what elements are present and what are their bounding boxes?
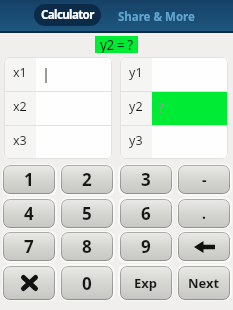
staticText: 0 bbox=[82, 272, 92, 295]
staticText: y2 bbox=[129, 98, 143, 115]
staticText: - bbox=[202, 170, 207, 189]
staticText: x3 bbox=[13, 132, 27, 149]
staticText: 3 bbox=[141, 168, 151, 191]
staticText: y1 bbox=[129, 64, 143, 81]
staticText: Share & More bbox=[118, 9, 195, 25]
staticText: 4 bbox=[24, 202, 34, 225]
staticText: . bbox=[202, 204, 206, 223]
staticText: 6 bbox=[141, 202, 151, 225]
staticText: x1 bbox=[13, 64, 27, 81]
staticText: y3 bbox=[129, 132, 143, 149]
staticText: 2 bbox=[82, 168, 92, 191]
staticText: x2 bbox=[13, 98, 27, 115]
staticText: 1 bbox=[24, 168, 34, 191]
staticText: ? bbox=[158, 99, 164, 117]
staticText: Calculator bbox=[41, 7, 94, 23]
staticText: Next bbox=[188, 274, 220, 292]
staticText: 8 bbox=[82, 235, 92, 258]
staticText: 5 bbox=[82, 202, 92, 225]
staticText: 7 bbox=[24, 235, 34, 258]
staticText: y2 = ? bbox=[100, 36, 133, 53]
staticText: 9 bbox=[141, 235, 151, 258]
staticText: Exp bbox=[134, 274, 158, 292]
